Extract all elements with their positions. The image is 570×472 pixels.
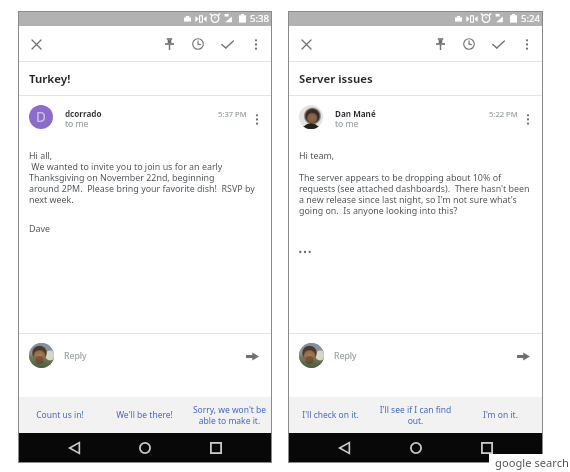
staticText: Sorry, we won't be able to make it.	[190, 404, 269, 426]
button[interactable]: Back	[309, 435, 380, 461]
staticText: D	[36, 108, 46, 126]
button[interactable]: Close	[25, 33, 47, 55]
button[interactable]: Pin	[429, 33, 451, 55]
button[interactable]: Dan Mané	[299, 96, 531, 142]
staticText: 5:38	[250, 12, 270, 25]
button[interactable]: I'll check on it.	[288, 397, 373, 433]
button[interactable]: We'll be there!	[102, 397, 187, 433]
staticText: google search	[495, 455, 570, 470]
staticText: We wanted to invite you to join us for a…	[29, 161, 223, 172]
staticText: 5:22 PM	[489, 109, 518, 119]
button[interactable]: Recents	[180, 435, 251, 461]
button[interactable]: Show quoted text	[299, 248, 319, 256]
button[interactable]: Close	[295, 33, 317, 55]
staticText: Reply	[334, 352, 357, 361]
button[interactable]: Sorry, we won't be able to make it.	[187, 397, 272, 433]
button[interactable]: More options	[516, 33, 538, 55]
button[interactable]: Count us in!	[18, 397, 102, 433]
button[interactable]: Recents	[451, 435, 522, 461]
staticText: Hi team,	[299, 150, 335, 161]
staticText: going on. Is anyone looking into this?	[299, 205, 458, 216]
staticText: I'll see if I can find out.	[376, 404, 455, 426]
button[interactable]: More options	[245, 33, 267, 55]
staticText: to me	[335, 120, 359, 129]
staticText: Dave	[29, 223, 51, 234]
button[interactable]: Home	[380, 435, 451, 461]
staticText: 5:37 PM	[218, 109, 247, 119]
staticText: next week.	[29, 194, 74, 205]
button[interactable]: Send	[514, 347, 532, 365]
staticText: around 2PM. Please bring your favorite d…	[29, 183, 255, 194]
staticText: Turkey!	[29, 71, 71, 86]
button[interactable]: Pin	[158, 33, 180, 55]
staticText: Thanksgiving on November 22nd, beginning	[29, 172, 215, 183]
staticText: We'll be there!	[116, 409, 173, 421]
staticText: Hi all,	[29, 150, 53, 161]
button[interactable]: Send	[243, 347, 261, 365]
button[interactable]: D	[29, 96, 260, 142]
button[interactable]: Reply	[299, 343, 532, 397]
staticText: I'll check on it.	[302, 409, 359, 421]
staticText: a new release since last night, so I'm n…	[299, 194, 517, 205]
staticText: requests (see attached dashboards). Ther…	[299, 183, 530, 194]
button[interactable]: I'm on it.	[458, 397, 543, 433]
staticText: to me	[65, 120, 89, 129]
staticText: 5:24	[521, 12, 541, 25]
staticText: Server issues	[299, 71, 373, 86]
staticText: I'm on it.	[483, 409, 518, 421]
button[interactable]: Done	[216, 33, 238, 55]
staticText: Dan Mané	[335, 110, 376, 119]
staticText: Reply	[64, 352, 87, 361]
button[interactable]: I'll see if I can find out.	[373, 397, 458, 433]
staticText: Count us in!	[36, 409, 84, 421]
button[interactable]: Home	[109, 435, 180, 461]
button[interactable]: Snooze	[187, 33, 209, 55]
staticText: The server appears to be dropping about …	[299, 172, 502, 183]
button[interactable]: Message options	[525, 110, 531, 128]
button[interactable]: Reply	[29, 343, 261, 397]
button[interactable]: Snooze	[458, 33, 480, 55]
button[interactable]: Message options	[254, 110, 260, 128]
staticText: dcorrado	[65, 110, 102, 119]
button[interactable]: Done	[487, 33, 509, 55]
button[interactable]: Back	[39, 435, 109, 461]
